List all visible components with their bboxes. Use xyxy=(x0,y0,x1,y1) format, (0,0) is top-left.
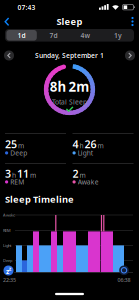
staticText: Sleep Timeline xyxy=(5,193,74,205)
staticText: 22:35 xyxy=(3,276,16,284)
button[interactable]: 1y xyxy=(102,29,134,42)
staticText: Total Sleep xyxy=(52,98,87,106)
staticText: m xyxy=(97,141,103,150)
staticText: z xyxy=(9,265,12,272)
staticText: 26 xyxy=(84,137,96,151)
staticText: 4w xyxy=(81,31,91,40)
staticText: h xyxy=(12,171,16,180)
staticText: 25 xyxy=(5,137,17,151)
button[interactable]: 1d xyxy=(6,29,38,42)
staticText: REM xyxy=(3,228,11,233)
staticText: m xyxy=(79,171,85,180)
staticText: 3 xyxy=(5,166,11,181)
staticText: Deep xyxy=(10,148,27,157)
staticText: z xyxy=(6,267,9,276)
staticText: Sleep xyxy=(56,15,82,28)
staticText: 1d xyxy=(18,31,26,40)
staticText: Sunday, September 1 xyxy=(35,51,104,60)
staticText: 07:43 xyxy=(17,3,35,12)
staticText: Light xyxy=(3,243,11,248)
button[interactable]: 4w xyxy=(70,29,102,42)
staticText: 06:38 xyxy=(117,276,130,284)
staticText: 11 xyxy=(17,166,29,181)
staticText: 8h 2m xyxy=(50,78,89,95)
button[interactable]: 7d xyxy=(37,29,69,42)
staticText: Awake xyxy=(78,177,99,186)
staticText: Deep xyxy=(3,258,12,263)
staticText: m xyxy=(18,141,24,150)
staticText: h xyxy=(79,141,83,150)
button[interactable]: More xyxy=(126,14,138,29)
staticText: 7d xyxy=(49,31,57,40)
button[interactable]: Previous day xyxy=(4,50,14,60)
staticText: Awake xyxy=(3,212,15,218)
staticText: 4 xyxy=(72,137,78,151)
staticText: 2 xyxy=(72,166,78,181)
staticText: REM xyxy=(10,177,24,186)
staticText: m xyxy=(30,171,36,180)
staticText: Light xyxy=(78,148,93,157)
staticText: 1y xyxy=(114,31,122,40)
button[interactable]: Next day xyxy=(125,50,135,60)
